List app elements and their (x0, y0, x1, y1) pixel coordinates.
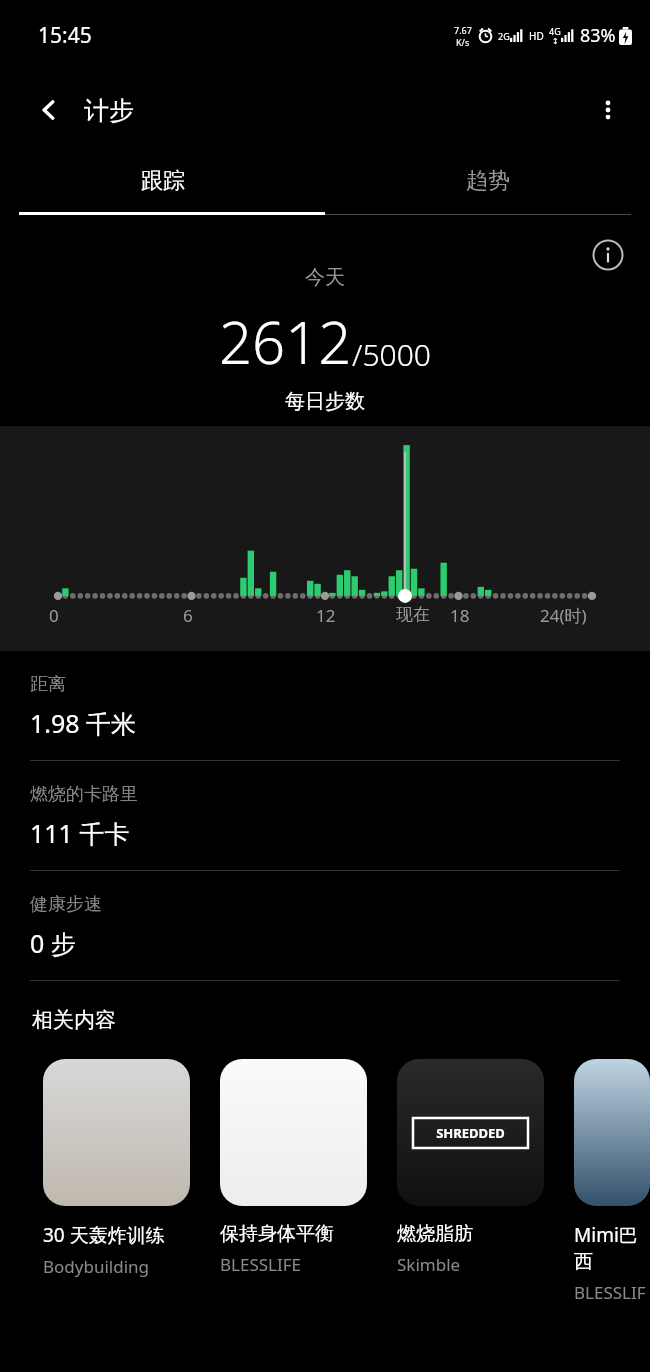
button[interactable]: 跟踪 (0, 150, 325, 212)
staticText: 12 (316, 604, 336, 627)
button[interactable]: More options (584, 86, 632, 134)
staticText: 燃烧的卡路里 (30, 783, 138, 806)
staticText: /5000 (352, 334, 431, 375)
staticText: 现在 (396, 604, 430, 625)
staticText: 1.98 千米 (30, 706, 137, 740)
staticText: 跟踪 (141, 167, 185, 195)
staticText: 4G (549, 25, 561, 37)
staticText: 每日步数 (285, 389, 365, 414)
staticText: K/s (456, 36, 470, 48)
staticText: 相关内容 (32, 1007, 116, 1033)
staticText: 18 (450, 604, 470, 627)
button[interactable]: 距离 (0, 651, 650, 760)
staticText: 24(时) (540, 604, 587, 627)
button[interactable]: Information (588, 235, 628, 275)
staticText: 保持身体平衡 (220, 1222, 334, 1246)
button[interactable]: 燃烧的卡路里 (0, 761, 650, 870)
staticText: 6 (183, 604, 193, 627)
staticText: SHREDDED (436, 1124, 505, 1142)
staticText: 计步 (84, 95, 134, 126)
button[interactable]: 趋势 (325, 150, 650, 212)
staticText: ↕ (552, 37, 559, 46)
staticText: BLESSLIFE (220, 1253, 302, 1276)
button[interactable]: Back (26, 87, 72, 133)
staticText: 趋势 (466, 167, 510, 195)
staticText: 83% (580, 23, 616, 48)
button[interactable]: 保持身体平衡 (220, 1059, 367, 1276)
staticText: Mimi巴西 (574, 1222, 650, 1274)
button[interactable]: SHREDDED (397, 1059, 544, 1276)
staticText: 7.67 (454, 24, 472, 36)
button[interactable]: Mimi巴西 (574, 1059, 650, 1304)
staticText: 0 步 (30, 926, 76, 960)
staticText: Skimble (397, 1253, 461, 1276)
staticText: 燃烧脂肪 (397, 1222, 473, 1246)
staticText: Bodybuilding (43, 1255, 149, 1278)
staticText: 0 (49, 604, 59, 627)
staticText: HD (529, 29, 544, 43)
button[interactable]: 健康步速 (0, 871, 650, 980)
staticText: 2G (498, 30, 510, 42)
staticText: 2612 (219, 302, 352, 381)
staticText: 111 千卡 (30, 816, 130, 850)
button[interactable]: 30 天轰炸训练 (43, 1059, 190, 1278)
staticText: 30 天轰炸训练 (43, 1222, 165, 1248)
staticText: 距离 (30, 673, 66, 696)
staticText: 健康步速 (30, 893, 102, 916)
staticText: BLESSLIFE (574, 1281, 650, 1304)
staticText: 今天 (305, 265, 345, 290)
staticText: 15:45 (38, 21, 92, 50)
